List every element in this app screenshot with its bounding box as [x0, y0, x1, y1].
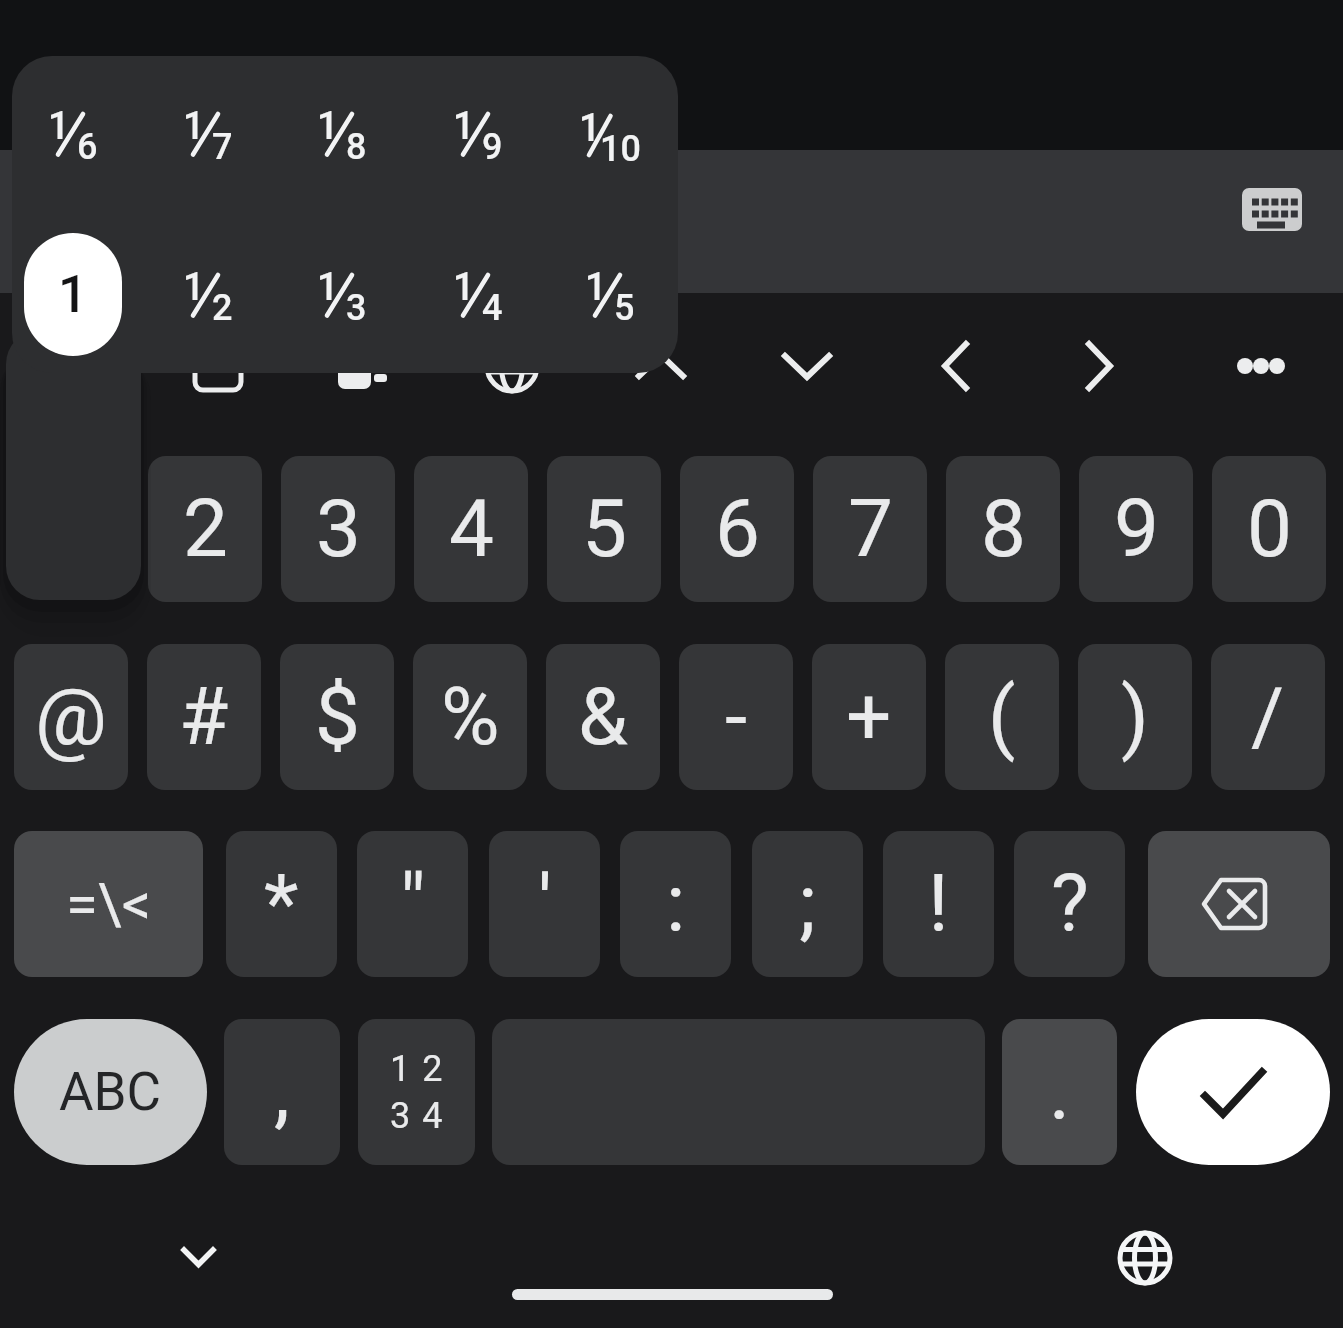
staticText: 1 [453, 104, 475, 149]
staticText: 3 [346, 287, 367, 329]
staticText: @ [35, 670, 107, 764]
staticText: 0 [1247, 482, 1292, 576]
staticText: 3 4 [390, 1095, 444, 1137]
staticText: ( [988, 670, 1016, 764]
staticText: 9 [1114, 482, 1159, 576]
staticText: 1 [317, 104, 339, 149]
staticText: 9 [482, 126, 503, 168]
staticText: 1 [58, 264, 88, 325]
staticText: 2 [212, 287, 233, 329]
staticText: 1 [579, 106, 601, 151]
staticText: 7 [848, 482, 893, 576]
staticText: ' [538, 857, 552, 951]
staticText: ? [1051, 857, 1089, 951]
staticText: 2 [183, 482, 228, 576]
staticText: " [400, 857, 426, 951]
staticText: 5 [582, 482, 627, 576]
staticText: - [725, 670, 748, 764]
staticText: 8 [346, 126, 367, 168]
staticText: : [666, 857, 686, 951]
staticText: 1 [585, 265, 607, 310]
staticText: 10 [600, 128, 641, 170]
staticText: =\< [66, 870, 152, 938]
staticText: 8 [981, 482, 1026, 576]
staticText: ) [1121, 670, 1149, 764]
staticText: # [179, 670, 229, 764]
staticText: 5 [614, 287, 635, 329]
staticText: ; [799, 857, 816, 951]
staticText: 6 [715, 482, 760, 576]
staticText: ABC [59, 1061, 162, 1123]
staticText: ! [928, 857, 949, 951]
staticText: 1 [183, 104, 205, 149]
staticText: 3 [316, 482, 361, 576]
staticText: * [264, 857, 299, 951]
staticText: $ [315, 670, 360, 764]
staticText: / [1251, 670, 1285, 764]
staticText: % [441, 670, 500, 764]
staticText: . [1049, 1045, 1071, 1139]
staticText: 4 [482, 287, 503, 329]
staticText: , [274, 1045, 290, 1139]
staticText: 1 [183, 265, 205, 310]
staticText: 1 [48, 104, 70, 149]
staticText: 6 [77, 126, 98, 168]
staticText: 4 [449, 482, 494, 576]
staticText: 1 2 [390, 1048, 444, 1090]
staticText: & [578, 670, 628, 764]
staticText: 1 [453, 265, 475, 310]
staticText: 7 [212, 126, 233, 168]
staticText: + [846, 670, 892, 764]
staticText: 1 [317, 265, 339, 310]
